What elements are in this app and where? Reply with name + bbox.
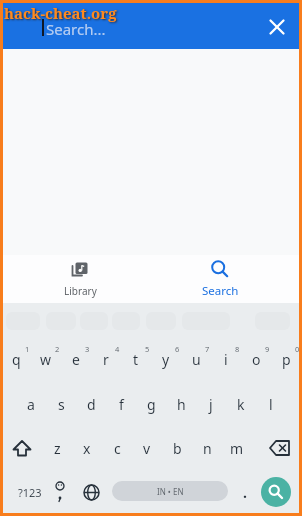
button[interactable]: Library xyxy=(48,255,112,303)
staticText: s xyxy=(58,395,65,414)
staticText: z xyxy=(54,439,61,458)
staticText: v xyxy=(143,439,151,458)
button[interactable]: x xyxy=(72,428,102,468)
staticText: l xyxy=(269,395,273,414)
button[interactable]: g xyxy=(136,383,166,425)
staticText: . xyxy=(243,483,247,502)
staticText: i xyxy=(224,350,228,369)
button[interactable]: i xyxy=(211,338,241,380)
staticText: c xyxy=(114,439,121,458)
staticText: Search... xyxy=(46,19,106,39)
button[interactable]: j xyxy=(196,383,226,425)
staticText: y xyxy=(162,350,170,369)
button[interactable] xyxy=(261,477,291,507)
button[interactable]: f xyxy=(106,383,136,425)
button[interactable]: k xyxy=(226,383,256,425)
staticText: r xyxy=(103,350,109,369)
staticText: m xyxy=(230,439,244,458)
staticText: o xyxy=(252,350,261,369)
button[interactable]: Search xyxy=(188,255,252,303)
staticText: f xyxy=(119,395,124,414)
staticText: q xyxy=(12,350,21,369)
staticText: a xyxy=(27,395,35,414)
staticText: Library xyxy=(64,284,97,298)
staticText: d xyxy=(87,395,96,414)
button[interactable]: t xyxy=(121,338,151,380)
staticText: n xyxy=(203,439,212,458)
staticText: 1 xyxy=(25,344,30,354)
button[interactable] xyxy=(263,13,291,41)
staticText: k xyxy=(237,395,245,414)
button[interactable]: . xyxy=(232,470,258,514)
button[interactable]: d xyxy=(76,383,106,425)
staticText: hack-cheat.org xyxy=(4,3,117,23)
button[interactable]: w xyxy=(31,338,61,380)
staticText: h xyxy=(177,395,186,414)
staticText: IN • EN xyxy=(157,486,184,497)
staticText: t xyxy=(133,350,139,369)
staticText: g xyxy=(147,395,156,414)
staticText: ?123 xyxy=(18,485,42,500)
staticText: j xyxy=(209,395,213,414)
button[interactable] xyxy=(45,470,75,514)
button[interactable]: q xyxy=(1,338,31,380)
button[interactable]: s xyxy=(46,383,76,425)
button[interactable]: n xyxy=(192,428,222,468)
button[interactable]: u xyxy=(181,338,211,380)
button[interactable]: a xyxy=(16,383,46,425)
staticText: e xyxy=(72,350,80,369)
staticText: 9 xyxy=(265,344,270,354)
button[interactable]: y xyxy=(151,338,181,380)
button[interactable] xyxy=(75,470,107,514)
staticText: Search xyxy=(202,283,239,299)
button[interactable] xyxy=(1,428,43,468)
button[interactable]: z xyxy=(42,428,72,468)
button[interactable]: h xyxy=(166,383,196,425)
staticText: w xyxy=(40,350,52,369)
staticText: b xyxy=(173,439,182,458)
staticText: 2 xyxy=(55,344,60,354)
button[interactable]: c xyxy=(102,428,132,468)
staticText: x xyxy=(83,439,91,458)
button[interactable]: b xyxy=(162,428,192,468)
button[interactable]: e xyxy=(61,338,91,380)
button[interactable]: m xyxy=(222,428,252,468)
button[interactable]: p xyxy=(271,338,301,380)
button[interactable]: IN • EN xyxy=(112,481,228,501)
button[interactable]: ?123 xyxy=(8,470,52,514)
staticText: 8 xyxy=(235,344,240,354)
button[interactable]: l xyxy=(256,383,286,425)
staticText: 3 xyxy=(85,344,90,354)
button[interactable]: o xyxy=(241,338,271,380)
staticText: u xyxy=(192,350,201,369)
staticText: 7 xyxy=(205,344,210,354)
staticText: 4 xyxy=(115,344,120,354)
staticText: 5 xyxy=(145,344,150,354)
staticText: 0 xyxy=(295,344,300,354)
button[interactable]: v xyxy=(132,428,162,468)
staticText: p xyxy=(282,350,291,369)
button[interactable]: r xyxy=(91,338,121,380)
button[interactable] xyxy=(259,428,301,468)
staticText: 6 xyxy=(175,344,180,354)
